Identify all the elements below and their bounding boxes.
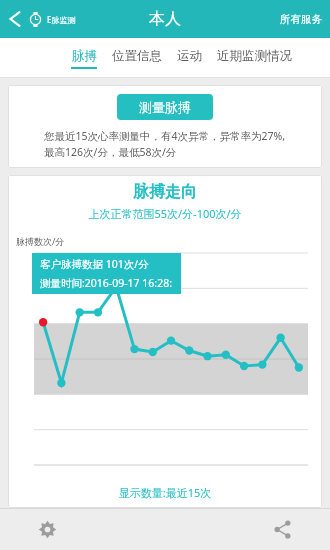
staticText: 位置信息 — [112, 48, 162, 64]
button[interactable]: Back to E脉监测 — [0, 6, 82, 32]
button[interactable]: 测量脉搏 — [117, 94, 213, 120]
staticText: 运动 — [177, 48, 202, 64]
staticText: 脉搏数次/分 — [16, 235, 65, 247]
button[interactable]: 位置信息 — [112, 42, 162, 75]
button[interactable]: 所有服务 — [272, 7, 330, 32]
button[interactable]: 显示数量:最近15次 — [8, 485, 322, 508]
staticText: 本人 — [149, 9, 181, 29]
staticText: 脉搏 — [72, 48, 97, 64]
staticText: 脉搏走向 — [8, 182, 322, 202]
button[interactable]: Settings — [30, 512, 65, 547]
staticText: 近期监测情况 — [217, 48, 292, 64]
button[interactable]: 运动 — [177, 42, 202, 75]
staticText: 测量时间:2016-09-17 16:28: — [40, 276, 173, 290]
staticText: 上次正常范围55次/分-100次/分 — [8, 206, 322, 221]
staticText: 所有服务 — [280, 13, 322, 26]
button[interactable]: Share — [265, 512, 300, 547]
staticText: 您最近15次心率测量中，有4次异常，异常率为27%, 最高126次/分，最低58… — [44, 129, 286, 159]
staticText: E脉监测 — [47, 14, 76, 25]
button[interactable]: 近期监测情况 — [217, 42, 292, 75]
staticText: 客户脉搏数据 101次/分 — [40, 257, 149, 271]
button[interactable]: 脉搏 — [71, 42, 97, 75]
staticText: 测量脉搏 — [139, 99, 191, 115]
